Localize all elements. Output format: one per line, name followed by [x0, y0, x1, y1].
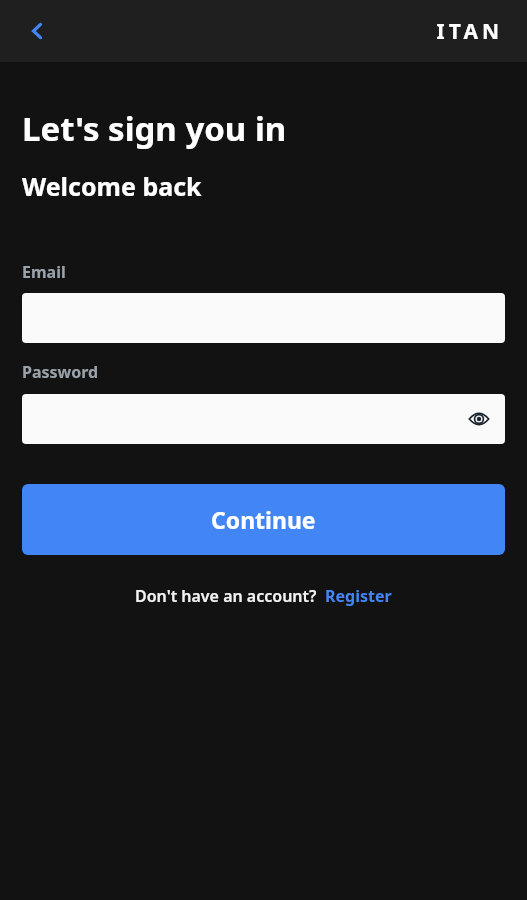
- button[interactable]: Continue: [22, 484, 505, 555]
- staticText: Welcome back: [22, 169, 202, 203]
- button[interactable]: Show password: [22, 394, 505, 444]
- staticText: Register: [325, 585, 392, 607]
- button[interactable]: [22, 293, 505, 343]
- staticText: Continue: [211, 504, 316, 535]
- button[interactable]: Register: [325, 585, 392, 607]
- staticText: ITAN: [436, 17, 503, 46]
- staticText: Let's sign you in: [22, 106, 287, 151]
- button[interactable]: Show password: [463, 403, 495, 435]
- staticText: Email: [22, 261, 66, 283]
- button[interactable]: Back: [14, 8, 60, 54]
- staticText: Don't have an account?: [135, 585, 317, 607]
- staticText: Password: [22, 361, 99, 383]
